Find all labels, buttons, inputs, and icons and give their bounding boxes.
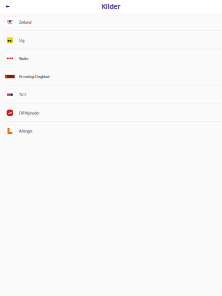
button[interactable]: Altinget — [0, 122, 222, 140]
staticText: Kristeligt Dagblad — [19, 74, 49, 79]
button[interactable]: Ug — [0, 31, 222, 49]
button[interactable]: DR Nyheder — [0, 104, 222, 122]
button[interactable]: Kristeligt Dagblad — [0, 67, 222, 85]
staticText: Ug — [19, 38, 24, 43]
staticText: Zetland — [19, 19, 31, 25]
button[interactable]: Radio — [0, 49, 222, 67]
staticText: Altinget — [19, 128, 32, 134]
button[interactable]: TV 2 — [0, 86, 222, 104]
staticText: TV 2 — [19, 92, 26, 97]
button[interactable]: Back — [0, 1, 16, 12]
staticText: Radio — [19, 56, 28, 61]
button[interactable]: Zetland — [0, 13, 222, 31]
staticText: Kilder — [101, 2, 120, 11]
staticText: DR Nyheder — [19, 110, 40, 115]
